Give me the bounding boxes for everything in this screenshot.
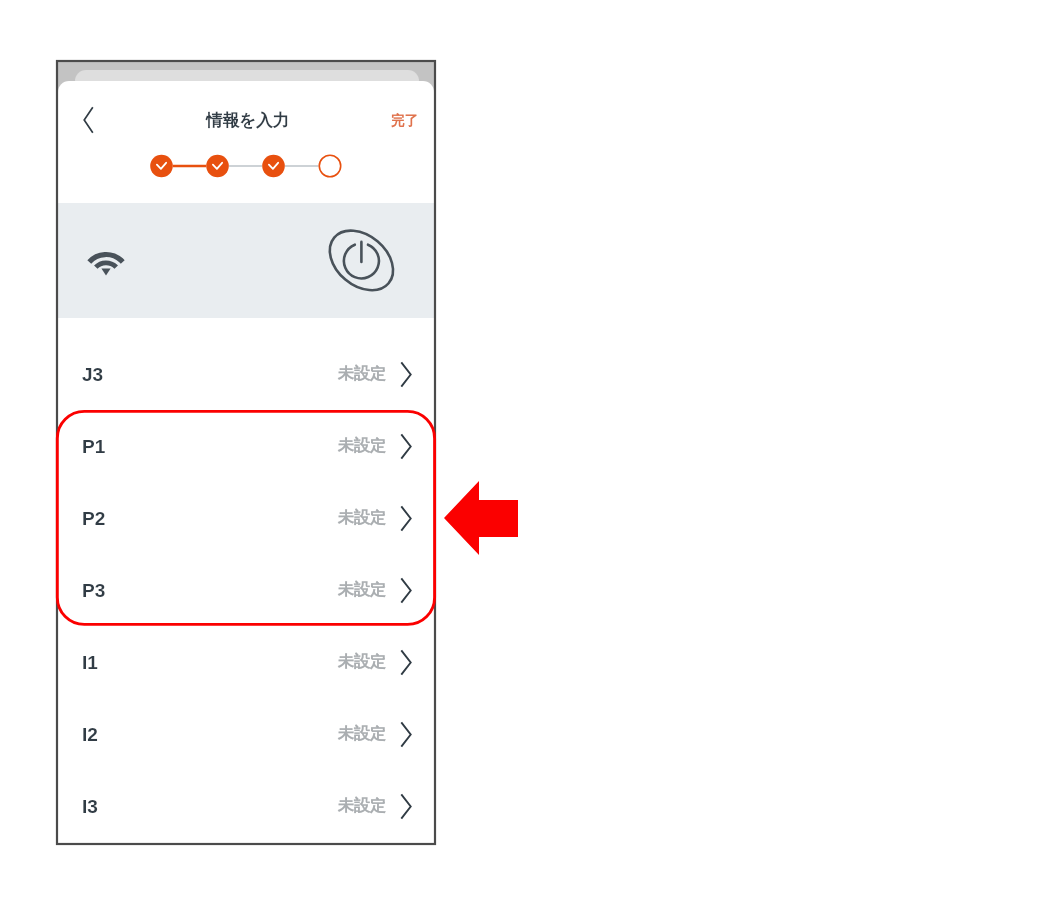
staticText: 未設定 [338, 724, 386, 744]
staticText: 情報を入力 [206, 110, 289, 131]
staticText: 未設定 [338, 652, 386, 672]
staticText: 未設定 [338, 364, 386, 384]
button[interactable]: P3 [58, 554, 434, 626]
button[interactable]: P2 [58, 482, 434, 554]
staticText: 未設定 [338, 436, 386, 456]
button[interactable]: Power [326, 223, 398, 295]
button[interactable]: Wi-Fi [82, 241, 130, 289]
button[interactable]: J3 [58, 338, 434, 410]
staticText: P3 [82, 580, 106, 601]
button[interactable]: 完了 [391, 112, 418, 129]
button[interactable]: Back [68, 100, 108, 140]
staticText: I2 [82, 724, 98, 745]
staticText: I3 [82, 796, 98, 817]
button[interactable]: P1 [58, 410, 434, 482]
staticText: I1 [82, 652, 98, 673]
button[interactable]: I3 [58, 770, 434, 842]
staticText: 完了 [391, 112, 418, 129]
staticText: P1 [82, 436, 106, 457]
staticText: 未設定 [338, 796, 386, 816]
button[interactable]: I1 [58, 626, 434, 698]
staticText: J3 [82, 364, 104, 385]
staticText: 未設定 [338, 508, 386, 528]
button[interactable]: I2 [58, 698, 434, 770]
staticText: 未設定 [338, 580, 386, 600]
staticText: P2 [82, 508, 106, 529]
